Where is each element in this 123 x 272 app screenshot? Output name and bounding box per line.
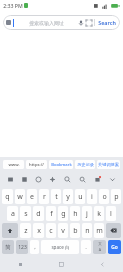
button[interactable]: h <box>70 206 80 221</box>
staticText: 历史记录 <box>77 162 94 167</box>
staticText: w <box>17 192 23 202</box>
staticText: 2:33 PM <box>3 2 23 9</box>
button[interactable]: 关键词搜索 <box>97 160 120 169</box>
button[interactable]: f <box>46 206 56 221</box>
button[interactable]: Search <box>75 172 90 187</box>
button[interactable]: j <box>82 206 92 221</box>
staticText: p <box>114 192 119 202</box>
staticText: 关键词搜索 <box>98 162 119 167</box>
staticText: www. <box>8 162 20 168</box>
button[interactable]: Scan code <box>86 20 92 26</box>
button[interactable]: w <box>15 189 25 204</box>
button[interactable]: m <box>94 223 104 238</box>
staticText: n <box>85 226 90 236</box>
button[interactable]: e <box>27 189 37 204</box>
button[interactable]: Switch language <box>93 240 106 254</box>
staticText: s <box>24 209 28 219</box>
staticText: m <box>96 226 103 236</box>
staticText: , <box>34 243 36 251</box>
staticText: 简 <box>5 244 11 251</box>
staticText: Go <box>111 244 118 251</box>
staticText: l <box>110 209 112 219</box>
staticText: d <box>36 209 41 219</box>
button[interactable]: . <box>81 240 91 254</box>
button[interactable]: Back <box>82 256 123 272</box>
staticText: z <box>24 226 28 236</box>
button[interactable]: Emoji <box>31 172 45 187</box>
button[interactable]: q <box>2 189 13 204</box>
button[interactable]: x <box>33 223 44 238</box>
button[interactable]: Bookmark <box>49 160 73 169</box>
button[interactable]: 历史记录 <box>75 160 95 169</box>
button[interactable]: c <box>46 223 56 238</box>
staticText: . <box>85 243 87 251</box>
staticText: 搜索或输入网址 <box>15 20 78 26</box>
staticText: u <box>78 192 83 202</box>
button[interactable]: s <box>20 206 31 221</box>
staticText: 123 <box>18 244 27 251</box>
button[interactable]: y <box>63 189 73 204</box>
button[interactable]: Voice search <box>78 20 84 26</box>
button[interactable]: www. <box>3 160 24 169</box>
button[interactable]: b <box>70 223 80 238</box>
button[interactable]: , <box>30 240 39 254</box>
staticText: q <box>5 192 10 202</box>
staticText: k <box>97 209 101 219</box>
button[interactable]: Search <box>97 19 117 26</box>
button[interactable]: Settings <box>45 172 60 187</box>
button[interactable]: t <box>51 189 61 204</box>
staticText: Search <box>98 19 116 26</box>
button[interactable]: u <box>75 189 85 204</box>
staticText: j <box>86 209 88 219</box>
button[interactable]: o <box>99 189 109 204</box>
staticText: y <box>66 192 70 202</box>
button[interactable]: d <box>33 206 44 221</box>
button[interactable]: Backspace <box>106 223 121 238</box>
button[interactable]: v <box>58 223 68 238</box>
button[interactable]: 简 <box>2 240 14 254</box>
button[interactable]: 搜索或输入网址 <box>3 15 120 30</box>
button[interactable]: Collapse <box>105 172 120 187</box>
button[interactable]: space 白 <box>41 240 79 254</box>
staticText: c <box>49 226 53 236</box>
button[interactable]: p <box>111 189 121 204</box>
staticText: e <box>30 192 34 202</box>
button[interactable]: Clipboard <box>17 172 31 187</box>
button[interactable]: Theme <box>60 172 75 187</box>
staticText: f <box>50 209 53 219</box>
button[interactable]: g <box>58 206 68 221</box>
button[interactable]: Keyboard layout <box>3 172 17 187</box>
staticText: space 白 <box>51 244 70 250</box>
staticText: 文 A <box>98 242 102 252</box>
staticText: o <box>102 192 107 202</box>
button[interactable]: Sticker <box>90 172 105 187</box>
staticText: i <box>91 192 93 202</box>
staticText: t <box>55 192 58 202</box>
button[interactable]: Shift <box>2 223 18 238</box>
button[interactable]: Home <box>41 256 82 272</box>
staticText: r <box>43 192 46 202</box>
button[interactable]: 123 <box>16 240 28 254</box>
button[interactable]: Recents <box>0 256 41 272</box>
button[interactable]: r <box>39 189 49 204</box>
button[interactable]: k <box>94 206 104 221</box>
staticText: v <box>61 226 65 236</box>
button[interactable]: l <box>106 206 116 221</box>
staticText: b <box>73 226 78 236</box>
button[interactable]: z <box>20 223 31 238</box>
button[interactable]: Go <box>108 240 121 254</box>
button[interactable]: https:// <box>26 160 47 169</box>
staticText: Bookmark <box>51 162 72 168</box>
staticText: g <box>61 209 66 219</box>
staticText: https:// <box>29 162 44 168</box>
button[interactable]: i <box>87 189 97 204</box>
button[interactable]: a <box>7 206 18 221</box>
button[interactable]: n <box>82 223 92 238</box>
staticText: x <box>37 226 41 236</box>
staticText: h <box>73 209 78 219</box>
staticText: a <box>11 209 15 219</box>
